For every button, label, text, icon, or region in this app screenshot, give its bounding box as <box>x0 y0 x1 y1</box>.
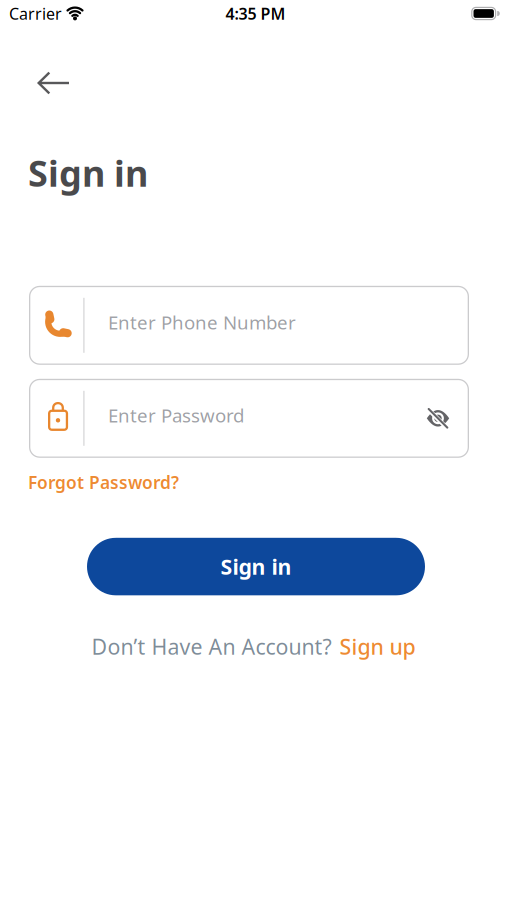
button[interactable]: Show Password <box>426 408 469 428</box>
staticText: Enter Phone Number <box>108 310 296 335</box>
staticText: Sign up <box>339 632 415 661</box>
button[interactable]: Sign in <box>87 538 425 595</box>
staticText: Sign in <box>28 149 148 197</box>
staticText: Don’t Have An Account? <box>91 632 331 661</box>
button[interactable]: Back <box>37 72 69 94</box>
staticText: Sign in <box>220 552 291 581</box>
staticText: 4:35 PM <box>225 3 285 24</box>
button[interactable]: Sign up <box>339 632 415 661</box>
button[interactable]: Enter Password <box>29 379 469 458</box>
staticText: Carrier <box>9 3 62 24</box>
button[interactable]: Enter Phone Number <box>29 286 469 365</box>
button[interactable]: Forgot Password? <box>28 471 179 494</box>
staticText: Forgot Password? <box>28 471 179 494</box>
staticText: Enter Password <box>108 403 244 428</box>
